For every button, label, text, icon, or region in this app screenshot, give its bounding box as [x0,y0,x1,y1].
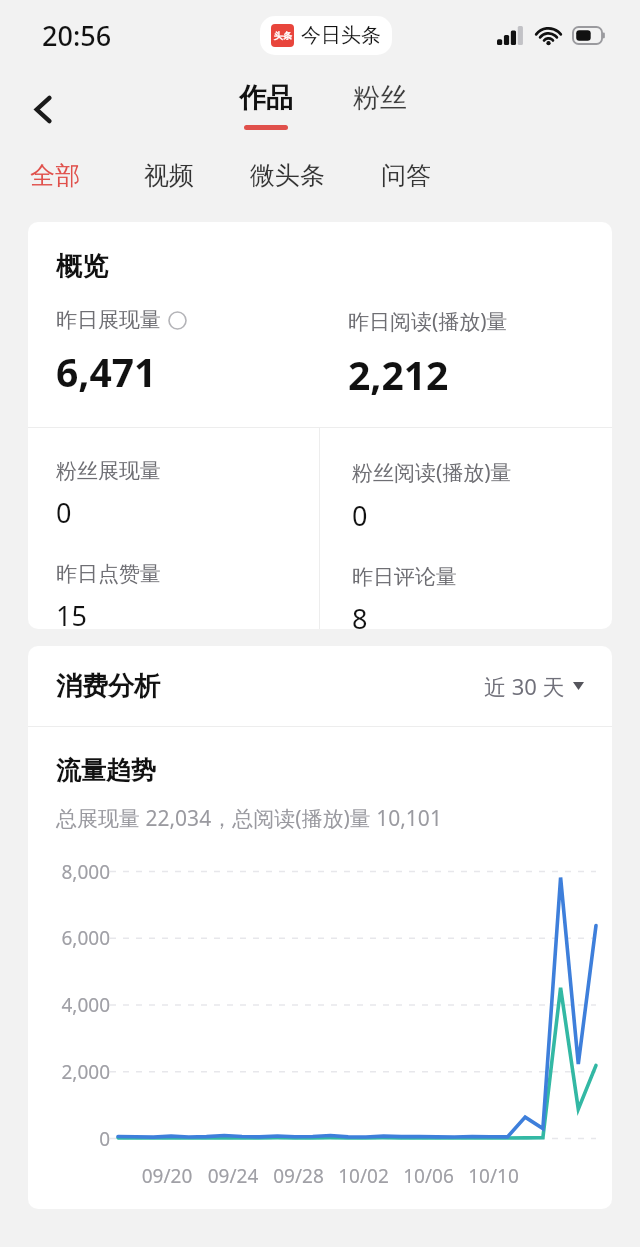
staticText: 6,000 [61,925,110,951]
staticText: 全部 [30,160,80,191]
staticText: 4,000 [61,992,110,1018]
staticText: 问答 [381,160,431,191]
staticText: 昨日展现量 [56,307,161,333]
button[interactable]: 问答 [381,160,431,191]
staticText: 8,000 [61,859,110,885]
button[interactable]: 全部 [30,160,80,191]
staticText: 8 [352,600,368,629]
button[interactable]: 微头条 [250,160,325,191]
staticText: 0 [56,494,72,531]
staticText: 10/10 [461,1163,526,1189]
staticText: 粉丝阅读(播放)量 [352,458,512,487]
staticText: 微头条 [250,160,325,191]
staticText: 昨日阅读(播放)量 [348,307,508,336]
staticText: 昨日点赞量 [56,561,161,587]
staticText: 作品 [239,81,293,115]
staticText: 6,471 [56,345,157,398]
button[interactable]: 粉丝 [341,81,419,115]
staticText: 2,000 [61,1059,110,1085]
button[interactable]: 近 30 天 [484,671,584,701]
staticText: 今日头条 [301,23,381,48]
staticText: 近 30 天 [484,671,565,701]
staticText: 09/20 [134,1163,200,1189]
staticText: 09/28 [266,1163,331,1189]
staticText: 头条 [274,30,292,41]
staticText: 20:56 [42,17,112,54]
staticText: 15 [56,597,87,629]
staticText: 流量趋势 [56,755,156,786]
staticText: 10/02 [331,1163,396,1189]
staticText: 粉丝 [353,81,407,115]
staticText: 0 [352,497,368,534]
staticText: 总展现量 22,034，总阅读(播放)量 10,101 [56,804,442,833]
staticText: 10/06 [396,1163,461,1189]
staticText: 消费分析 [56,670,160,703]
staticText: 昨日评论量 [352,564,457,590]
button[interactable]: 视频 [144,160,194,191]
staticText: 0 [99,1126,110,1152]
staticText: 09/24 [200,1163,266,1189]
staticText: 2,212 [348,348,449,401]
button[interactable]: 作品 [227,81,305,130]
staticText: 粉丝展现量 [56,458,161,484]
staticText: 概览 [56,250,108,283]
button[interactable]: Back [16,82,70,136]
staticText: 视频 [144,160,194,191]
